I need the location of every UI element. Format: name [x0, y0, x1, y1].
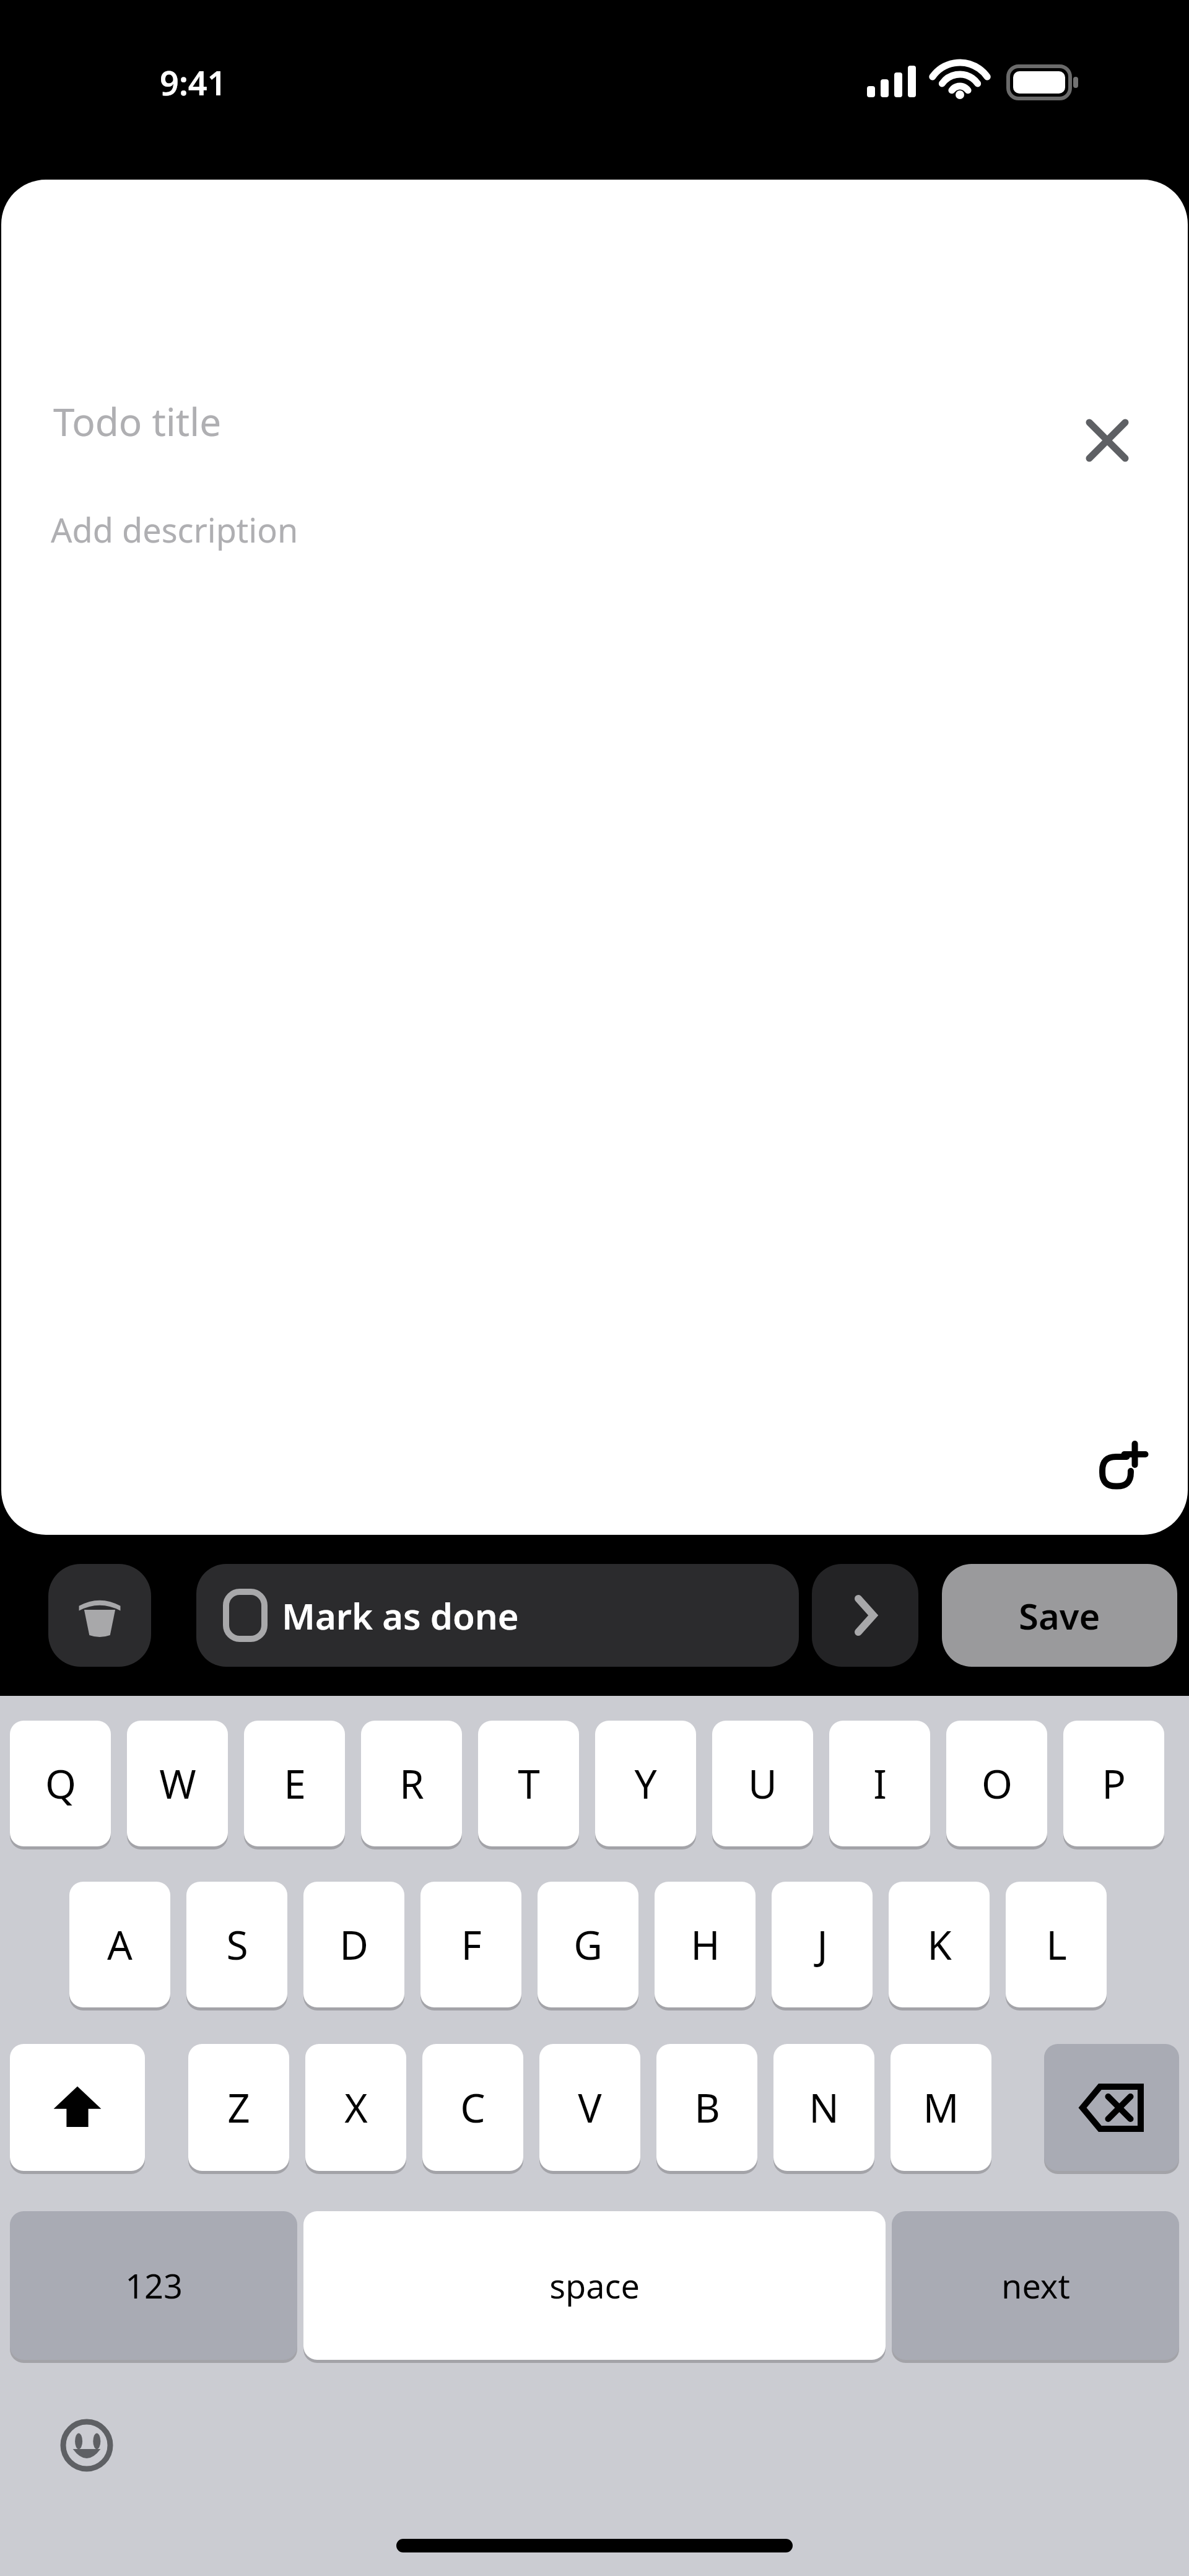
staticText: F: [461, 1918, 482, 1971]
button[interactable]: B: [656, 2044, 757, 2171]
staticText: K: [927, 1918, 952, 1971]
staticText: Save: [1019, 1591, 1100, 1640]
staticText: B: [694, 2080, 720, 2134]
staticText: T: [518, 1757, 540, 1810]
button[interactable]: Add description: [51, 507, 298, 552]
staticText: Q: [45, 1757, 76, 1810]
staticText: space: [549, 2263, 640, 2308]
staticText: H: [690, 1918, 720, 1971]
staticText: X: [344, 2080, 368, 2134]
button[interactable]: Backspace: [1044, 2044, 1179, 2171]
button[interactable]: W: [127, 1721, 228, 1846]
button[interactable]: Shift: [10, 2044, 145, 2171]
button[interactable]: Close: [1060, 393, 1154, 487]
button[interactable]: S: [186, 1882, 287, 2007]
button[interactable]: Z: [188, 2044, 289, 2171]
staticText: D: [339, 1918, 368, 1971]
staticText: Z: [227, 2080, 250, 2134]
button[interactable]: U: [712, 1721, 813, 1846]
staticText: J: [817, 1918, 828, 1971]
button[interactable]: H: [655, 1882, 756, 2007]
staticText: M: [923, 2080, 959, 2134]
button[interactable]: F: [420, 1882, 521, 2007]
button[interactable]: C: [422, 2044, 523, 2171]
staticText: S: [226, 1918, 248, 1971]
button[interactable]: G: [538, 1882, 638, 2007]
button[interactable]: K: [889, 1882, 990, 2007]
button[interactable]: T: [478, 1721, 579, 1846]
button[interactable]: Y: [595, 1721, 696, 1846]
button[interactable]: 123: [10, 2211, 297, 2360]
staticText: 9:41: [160, 59, 227, 105]
staticText: Y: [634, 1757, 657, 1810]
button[interactable]: D: [303, 1882, 404, 2007]
staticText: C: [460, 2080, 486, 2134]
button[interactable]: I: [829, 1721, 930, 1846]
staticText: U: [748, 1757, 777, 1810]
staticText: R: [399, 1757, 424, 1810]
button[interactable]: More: [812, 1564, 918, 1667]
button[interactable]: O: [946, 1721, 1047, 1846]
button[interactable]: next: [892, 2211, 1179, 2360]
button[interactable]: E: [244, 1721, 345, 1846]
button[interactable]: Mark as done: [196, 1564, 799, 1667]
staticText: L: [1046, 1918, 1067, 1971]
button[interactable]: J: [772, 1882, 873, 2007]
button[interactable]: A: [69, 1882, 170, 2007]
staticText: A: [107, 1918, 133, 1971]
staticText: V: [578, 2080, 602, 2134]
staticText: O: [982, 1757, 1013, 1810]
button[interactable]: V: [539, 2044, 640, 2171]
button[interactable]: X: [305, 2044, 406, 2171]
button[interactable]: Todo title: [53, 395, 222, 447]
button[interactable]: Delete: [48, 1564, 151, 1667]
button[interactable]: Add attachment: [1070, 1425, 1163, 1517]
staticText: 123: [125, 2263, 183, 2308]
button[interactable]: L: [1006, 1882, 1107, 2007]
button[interactable]: N: [773, 2044, 874, 2171]
button[interactable]: Q: [10, 1721, 111, 1846]
button[interactable]: M: [891, 2044, 991, 2171]
button[interactable]: P: [1063, 1721, 1164, 1846]
staticText: I: [873, 1757, 887, 1810]
staticText: E: [284, 1757, 306, 1810]
staticText: W: [159, 1757, 196, 1810]
staticText: N: [809, 2080, 839, 2134]
staticText: next: [1001, 2263, 1070, 2308]
button[interactable]: Emoji: [37, 2396, 136, 2495]
staticText: P: [1102, 1757, 1126, 1810]
button[interactable]: R: [361, 1721, 462, 1846]
staticText: Mark as done: [282, 1591, 519, 1640]
staticText: G: [573, 1918, 603, 1971]
button[interactable]: space: [303, 2211, 886, 2360]
button[interactable]: Save: [942, 1564, 1177, 1667]
